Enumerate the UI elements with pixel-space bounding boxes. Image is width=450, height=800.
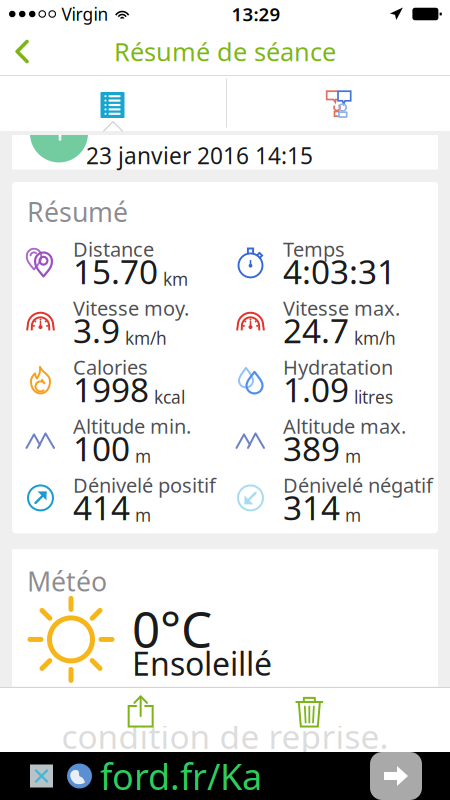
- button[interactable]: Fermer la publicité: [30, 764, 53, 787]
- staticText: 15.70: [73, 249, 158, 294]
- staticText: 389: [283, 426, 340, 471]
- staticText: litres: [354, 385, 393, 408]
- staticText: 24.7: [283, 308, 349, 353]
- staticText: Vitesse max.: [283, 295, 400, 321]
- staticText: kcal: [154, 385, 185, 408]
- staticText: 23 janvier 2016 14:15: [86, 140, 313, 170]
- button[interactable]: Supprimer: [281, 686, 337, 736]
- button[interactable]: Réseaux: [227, 75, 450, 131]
- staticText: Dénivelé négatif: [283, 472, 433, 498]
- staticText: 4:03:31: [283, 249, 396, 294]
- staticText: 414: [73, 485, 130, 530]
- staticText: km: [163, 267, 188, 290]
- staticText: 1998: [73, 367, 149, 412]
- staticText: Altitude max.: [283, 413, 406, 439]
- staticText: m: [135, 503, 151, 526]
- staticText: 0°C: [132, 596, 212, 661]
- staticText: Résumé de séance: [114, 35, 336, 68]
- staticText: Météo: [27, 563, 107, 599]
- staticText: km/h: [354, 326, 396, 349]
- staticText: 314: [283, 485, 340, 530]
- button[interactable]: Partager: [113, 686, 169, 736]
- staticText: Vitesse moy.: [73, 295, 189, 321]
- staticText: Altitude min.: [73, 413, 191, 439]
- staticText: 1.09: [283, 367, 349, 412]
- staticText: km/h: [125, 326, 167, 349]
- staticText: condition de reprise.: [61, 714, 388, 758]
- staticText: 3.9: [73, 308, 120, 353]
- staticText: Calories: [73, 354, 148, 380]
- staticText: Virgin: [61, 2, 108, 25]
- staticText: Temps: [283, 236, 345, 262]
- staticText: 13:29: [231, 2, 280, 26]
- staticText: Dénivelé positif: [73, 472, 216, 498]
- staticText: m: [345, 503, 361, 526]
- staticText: Ensoleillé: [132, 642, 272, 685]
- staticText: ford.fr/Ka: [100, 752, 262, 800]
- button[interactable]: Ouvrir la publicité: [370, 752, 422, 800]
- button[interactable]: Retour: [2, 29, 42, 73]
- button[interactable]: Résumé: [0, 75, 226, 131]
- staticText: 100: [73, 426, 130, 471]
- staticText: m: [135, 444, 151, 467]
- staticText: Résumé: [27, 194, 128, 229]
- staticText: Hydratation: [283, 354, 393, 380]
- staticText: m: [345, 444, 361, 467]
- staticText: Distance: [73, 236, 154, 262]
